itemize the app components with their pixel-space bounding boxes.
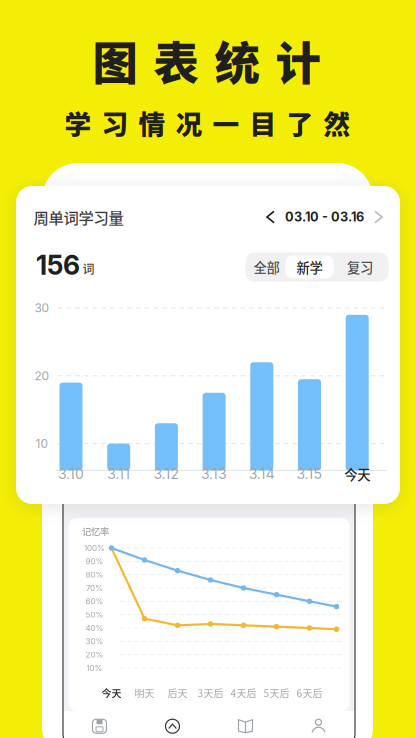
staticText: 70% (86, 583, 103, 593)
staticText: 学习情况一目了然 (64, 103, 350, 142)
button[interactable]: 单词 (63, 712, 136, 738)
staticText: 周单词学习量 (33, 206, 123, 228)
staticText: 记忆率 (82, 524, 109, 538)
staticText: 词 (82, 260, 94, 277)
staticText: 3.12 (153, 465, 179, 482)
staticText: 100% (84, 543, 105, 553)
staticText: 后天 (167, 686, 187, 700)
staticText: 30% (85, 636, 103, 646)
button[interactable]: 新学 (285, 255, 333, 278)
button[interactable]: 复习 (333, 255, 386, 278)
staticText: 4天后 (230, 686, 256, 700)
staticText: 30 (34, 301, 49, 315)
staticText: 60% (85, 596, 103, 606)
staticText: 5天后 (263, 686, 289, 700)
staticText: 20 (34, 368, 49, 383)
staticText: 图表统计 (92, 28, 320, 93)
button[interactable]: 统计 (136, 712, 209, 738)
staticText: 3.13 (201, 465, 227, 482)
staticText: 新学 (296, 257, 322, 277)
staticText: 3.10 (58, 465, 84, 482)
staticText: 10% (86, 663, 102, 673)
staticText: 50% (85, 610, 103, 619)
staticText: 40% (85, 623, 103, 633)
staticText: 全部 (253, 257, 279, 277)
staticText: 156 (36, 249, 80, 281)
staticText: 80% (85, 570, 103, 579)
button[interactable]: Previous week (257, 202, 283, 232)
button[interactable]: Next week (365, 202, 391, 232)
button[interactable]: 词典 (209, 712, 282, 738)
button[interactable]: 全部 (247, 255, 285, 278)
staticText: 3.14 (249, 465, 275, 482)
staticText: 复习 (347, 257, 373, 277)
staticText: 3天后 (197, 686, 223, 700)
staticText: 明天 (134, 686, 154, 700)
staticText: 今天 (344, 464, 370, 484)
staticText: 10 (35, 436, 48, 451)
staticText: 今天 (101, 686, 121, 700)
button[interactable]: 我的 (282, 712, 355, 738)
staticText: 6天后 (296, 686, 322, 700)
staticText: 90% (85, 556, 103, 566)
staticText: 3.15 (296, 465, 322, 482)
staticText: 3.11 (107, 465, 130, 482)
staticText: 20% (85, 650, 103, 659)
staticText: 03.10 - 03.16 (285, 209, 364, 225)
